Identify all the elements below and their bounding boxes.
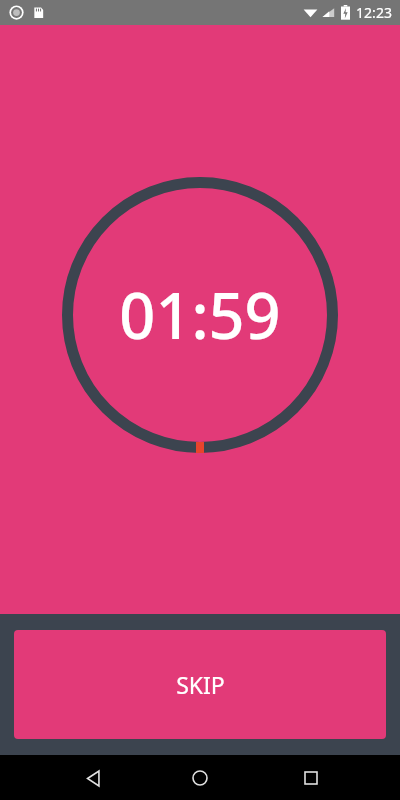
button[interactable]: SKIP — [14, 630, 386, 739]
staticText: 01:59 — [119, 272, 281, 358]
staticText: SKIP — [176, 669, 225, 700]
button[interactable]: Back — [77, 762, 109, 794]
button[interactable]: Recent apps — [295, 762, 327, 794]
staticText: 12:23 — [356, 3, 392, 22]
button[interactable]: Home — [184, 762, 216, 794]
